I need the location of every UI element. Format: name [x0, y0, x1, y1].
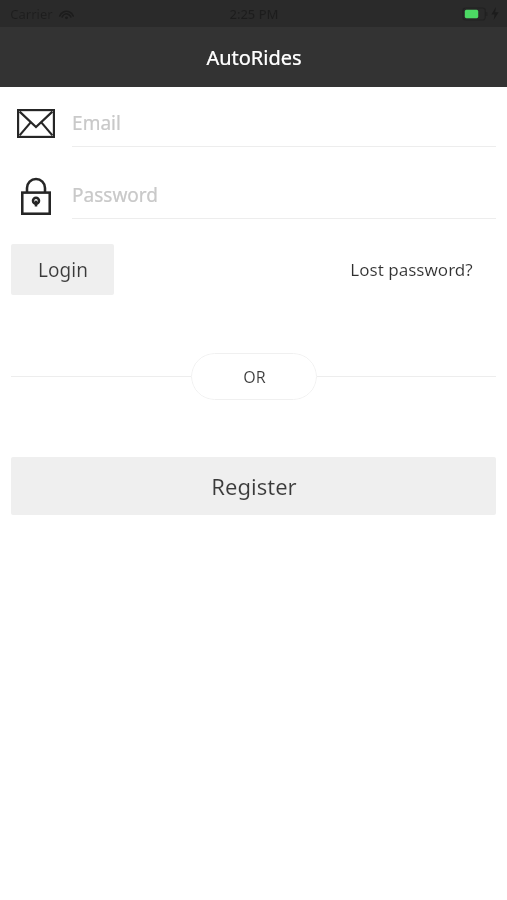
button[interactable]: Password [0, 172, 507, 218]
staticText: AutoRides [206, 44, 302, 71]
other: Password [0, 175, 72, 215]
other: Email [0, 109, 72, 138]
button[interactable]: Login [11, 244, 114, 295]
staticText: Login [38, 257, 88, 283]
button[interactable]: Register [11, 457, 496, 515]
staticText: Carrier [10, 5, 53, 23]
staticText: Register [211, 471, 297, 501]
button[interactable]: Email [0, 100, 507, 146]
staticText: 2:25 PM [229, 5, 279, 23]
staticText: OR [243, 366, 266, 388]
button[interactable]: Lost password? [342, 248, 481, 291]
staticText: Email [72, 110, 121, 136]
staticText: Lost password? [350, 258, 473, 281]
button[interactable]: OR [191, 353, 317, 400]
staticText: Password [72, 182, 158, 208]
